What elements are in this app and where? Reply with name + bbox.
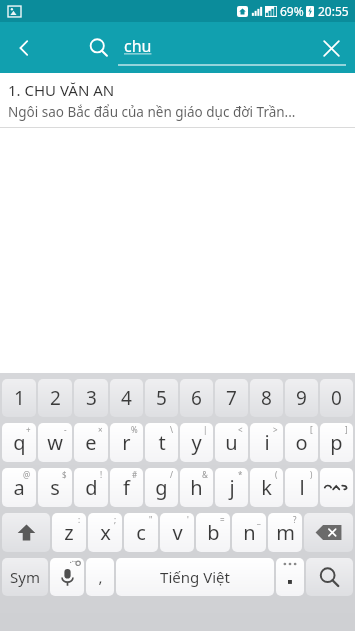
button[interactable]: 8 (250, 379, 283, 417)
button[interactable]: 1 (2, 379, 36, 417)
staticText: j (229, 474, 235, 501)
staticText: v (172, 519, 183, 546)
button[interactable]: a (2, 468, 36, 507)
staticText: 7 (226, 385, 237, 411)
staticText: [ (310, 424, 313, 435)
button[interactable]: Back (0, 24, 48, 72)
button[interactable]: Voice input (50, 558, 84, 596)
staticText: \ (170, 424, 173, 435)
button[interactable]: b (196, 513, 230, 552)
button[interactable]: t (145, 423, 178, 462)
staticText: Tiếng Việt (160, 567, 230, 587)
button[interactable]: Shift (2, 513, 50, 552)
staticText: b (207, 519, 220, 546)
staticText: Sym (10, 567, 40, 587)
button[interactable]: c (124, 513, 158, 552)
button[interactable]: z (52, 513, 86, 552)
button[interactable]: x (88, 513, 122, 552)
staticText: _ (257, 514, 261, 525)
staticText: a (13, 474, 25, 501)
button[interactable]: 6 (180, 379, 213, 417)
staticText: z (64, 519, 74, 546)
button[interactable]: f (110, 468, 143, 507)
staticText: # (132, 469, 138, 480)
staticText: 20:55 (318, 3, 349, 19)
button[interactable]: r (110, 423, 143, 462)
staticText: $ (62, 469, 67, 480)
button[interactable]: Period (276, 558, 304, 596)
staticText: 8 (261, 385, 272, 411)
button[interactable]: 9 (285, 379, 318, 417)
button[interactable]: w (38, 423, 72, 462)
button[interactable]: k (250, 468, 283, 507)
staticText: @ (23, 469, 31, 480)
staticText: - (64, 424, 67, 435)
staticText: 69% (280, 3, 304, 19)
button[interactable]: 1. CHU VĂN AN (0, 73, 355, 127)
staticText: k (261, 474, 272, 501)
button[interactable]: Tiếng Việt (116, 558, 274, 596)
button[interactable]: u (215, 423, 248, 462)
staticText: n (243, 519, 256, 546)
staticText: 1 (14, 385, 25, 411)
staticText: / (170, 469, 173, 480)
staticText: d (85, 474, 98, 501)
staticText: = (220, 514, 225, 525)
button[interactable]: d (74, 468, 108, 507)
button[interactable]: Sym (2, 558, 48, 596)
staticText: f (123, 474, 130, 501)
button[interactable]: g (145, 468, 178, 507)
staticText: Ngôi sao Bắc đẩu của nền giáo dục đời Tr… (8, 103, 296, 121)
button[interactable]: e (74, 423, 108, 462)
staticText: u (225, 429, 238, 456)
staticText: + (26, 424, 31, 435)
button[interactable]: 0 (320, 379, 353, 417)
button[interactable]: 5 (145, 379, 178, 417)
button[interactable]: y (180, 423, 213, 462)
staticText: 5 (156, 385, 167, 411)
button[interactable]: v (160, 513, 194, 552)
staticText: ) (310, 469, 313, 480)
staticText: " (149, 514, 153, 525)
button[interactable]: o (285, 423, 318, 462)
staticText: , (98, 567, 103, 587)
button[interactable]: m (268, 513, 302, 552)
button[interactable]: 7 (215, 379, 248, 417)
button[interactable]: Clear (307, 24, 355, 72)
staticText: < (238, 424, 243, 435)
staticText: > (273, 424, 278, 435)
staticText: * (238, 469, 243, 480)
button[interactable]: q (2, 423, 36, 462)
button[interactable]: Diacritics (320, 468, 353, 507)
staticText: r (122, 429, 131, 456)
staticText: p (330, 429, 343, 456)
staticText: ! (100, 469, 103, 480)
button[interactable]: Delete (304, 513, 353, 552)
button[interactable]: 2 (38, 379, 72, 417)
button[interactable]: l (285, 468, 318, 507)
staticText: chu (124, 35, 152, 57)
button[interactable]: h (180, 468, 213, 507)
button[interactable]: i (250, 423, 283, 462)
staticText: 1. CHU VĂN AN (8, 80, 115, 100)
button[interactable]: n (232, 513, 266, 552)
button[interactable]: s (38, 468, 72, 507)
staticText: y (191, 429, 202, 456)
staticText: ; (114, 514, 117, 525)
button[interactable]: p (320, 423, 353, 462)
staticText: 3 (86, 385, 97, 411)
staticText: g (155, 474, 168, 501)
button[interactable]: j (215, 468, 248, 507)
staticText: 4 (121, 385, 132, 411)
staticText: h (190, 474, 203, 501)
button[interactable]: Search (306, 558, 353, 596)
staticText: ' (187, 514, 189, 525)
staticText: ? (293, 514, 297, 525)
staticText: 2 (50, 385, 61, 411)
button[interactable]: 4 (110, 379, 143, 417)
button[interactable]: 3 (74, 379, 108, 417)
staticText: c (136, 519, 146, 546)
staticText: : (78, 514, 81, 525)
staticText: & (202, 469, 208, 480)
button[interactable]: , (86, 558, 114, 596)
